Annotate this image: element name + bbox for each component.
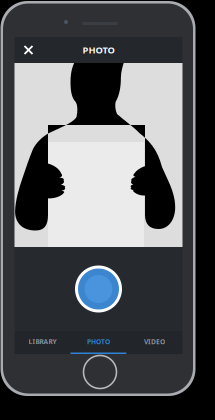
staticText: PHOTO [87,337,110,346]
button[interactable]: PHOTO [70,331,126,354]
button[interactable]: LIBRARY [14,331,70,354]
button[interactable]: VIDEO [126,331,182,354]
staticText: VIDEO [144,337,165,346]
button[interactable]: Take photo [75,265,122,312]
staticText: PHOTO [82,44,114,56]
staticText: LIBRARY [28,337,56,346]
button[interactable]: Close [14,37,37,63]
